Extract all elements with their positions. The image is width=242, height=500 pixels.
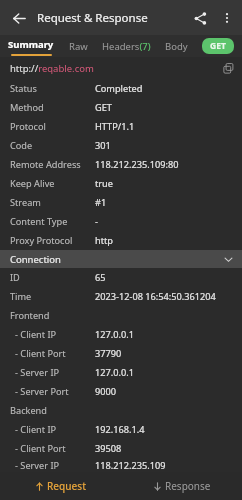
button[interactable]: Remote Address — [0, 155, 242, 174]
staticText: - Server IP — [15, 459, 60, 472]
staticText: Method — [10, 101, 44, 114]
button[interactable]: Response — [121, 472, 242, 500]
staticText: Summary — [8, 38, 54, 51]
button[interactable]: Time — [0, 287, 242, 306]
button[interactable]: Proxy Protocol — [0, 231, 242, 250]
staticText: - Server Port — [15, 385, 69, 398]
staticText: Completed — [95, 82, 143, 95]
staticText: Time — [10, 290, 32, 303]
staticText: 118.212.235.109:80 — [95, 158, 179, 171]
staticText: GET — [210, 40, 226, 52]
button[interactable]: Body — [158, 35, 195, 57]
staticText: Stream — [10, 196, 41, 209]
button[interactable]: Connection — [0, 250, 242, 268]
staticText: http — [95, 234, 113, 247]
staticText: 127.0.0.1 — [95, 366, 134, 379]
staticText: 39508 — [95, 442, 122, 455]
button[interactable]: Backend — [0, 401, 242, 420]
button[interactable]: Content Type — [0, 212, 242, 231]
button[interactable]: Share — [186, 4, 214, 32]
button[interactable]: - Client IP — [0, 420, 242, 439]
staticText: Code — [10, 139, 33, 152]
button[interactable]: Headers(7) — [95, 35, 158, 57]
staticText: - Client Port — [15, 347, 66, 360]
staticText: Content Type — [10, 215, 68, 228]
button[interactable]: - Server IP — [0, 363, 242, 382]
staticText: 127.0.0.1 — [95, 328, 134, 341]
staticText: - Client Port — [15, 442, 66, 455]
staticText: Protocol — [10, 120, 46, 133]
staticText: 118.212.235.109 — [95, 459, 166, 472]
staticText: - Client IP — [15, 328, 57, 341]
staticText: Raw — [69, 40, 88, 53]
staticText: 9000 — [95, 385, 117, 398]
staticText: Request — [47, 479, 86, 493]
button[interactable]: More options — [214, 5, 240, 31]
staticText: Headers(7) — [102, 40, 151, 53]
button[interactable]: Frontend — [0, 306, 242, 325]
staticText: Remote Address — [10, 158, 81, 171]
button[interactable]: Code — [0, 136, 242, 155]
staticText: true — [95, 177, 113, 190]
staticText: 37790 — [95, 347, 122, 360]
button[interactable]: ID — [0, 268, 242, 287]
button[interactable]: Request — [0, 472, 121, 500]
staticText: Response — [165, 479, 211, 493]
button[interactable]: Keep Alive — [0, 174, 242, 193]
staticText: Body — [165, 40, 188, 53]
staticText: Frontend — [10, 309, 50, 322]
button[interactable]: - Server IP — [0, 458, 242, 472]
staticText: Status — [10, 82, 37, 95]
staticText: 192.168.1.4 — [95, 423, 145, 436]
button[interactable]: - Server Port — [0, 382, 242, 401]
staticText: Connection — [10, 253, 61, 266]
button[interactable]: Stream — [0, 193, 242, 212]
staticText: 301 — [95, 139, 111, 152]
button[interactable]: Summary — [0, 35, 62, 57]
staticText: Keep Alive — [10, 177, 55, 190]
button[interactable]: Method — [0, 98, 242, 117]
staticText: http://reqable.com — [10, 62, 94, 75]
button[interactable]: Status — [0, 79, 242, 98]
staticText: 2023-12-08 16:54:50.361204 — [95, 290, 216, 303]
staticText: Request & Response — [37, 10, 148, 26]
button[interactable]: Copy URL — [218, 58, 238, 78]
staticText: - Server IP — [15, 366, 60, 379]
staticText: Proxy Protocol — [10, 234, 73, 247]
staticText: GET — [95, 101, 112, 114]
button[interactable]: Protocol — [0, 117, 242, 136]
button[interactable]: Raw — [62, 35, 95, 57]
button[interactable]: GET — [202, 38, 234, 54]
staticText: - Client IP — [15, 423, 57, 436]
staticText: - — [95, 215, 98, 228]
staticText: Backend — [10, 404, 47, 417]
staticText: ID — [10, 271, 20, 284]
button[interactable]: - Client Port — [0, 439, 242, 458]
staticText: #1 — [95, 196, 107, 209]
staticText: 65 — [95, 271, 106, 284]
button[interactable]: Back — [4, 3, 34, 33]
button[interactable]: - Client Port — [0, 344, 242, 363]
button[interactable]: - Client IP — [0, 325, 242, 344]
staticText: HTTP/1.1 — [95, 120, 135, 133]
